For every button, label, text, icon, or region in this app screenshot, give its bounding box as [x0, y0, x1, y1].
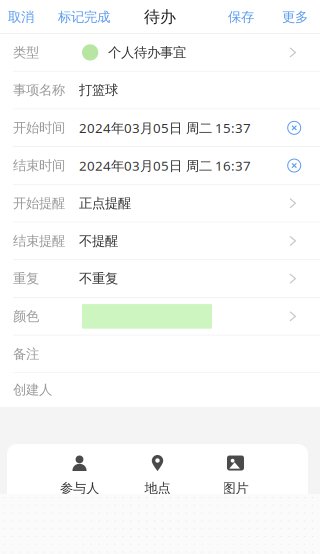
staticText: 不重复	[79, 270, 118, 287]
staticText: 2024年03月05日 周二 15:37	[79, 119, 251, 137]
staticText: 类型	[13, 44, 39, 61]
button[interactable]: 开始时间	[0, 109, 320, 146]
staticText: 创建人	[13, 382, 52, 398]
button[interactable]: 取消	[0, 0, 46, 34]
staticText: 颜色	[13, 308, 39, 325]
staticText: 图片	[222, 480, 248, 496]
button[interactable]: 标记完成	[46, 0, 122, 34]
staticText: 参与人	[60, 480, 99, 496]
button[interactable]: 地点	[126, 455, 188, 496]
button[interactable]: 颜色	[0, 298, 320, 335]
staticText: 保存	[228, 9, 254, 25]
staticText: 待办	[144, 7, 176, 27]
button[interactable]: 创建人	[0, 373, 320, 406]
staticText: 正点提醒	[79, 195, 131, 211]
staticText: 重复	[13, 270, 39, 287]
staticText: 打篮球	[79, 82, 118, 98]
button[interactable]: 保存	[215, 0, 268, 34]
staticText: 更多	[282, 9, 308, 25]
staticText: 事项名称	[13, 82, 65, 98]
button[interactable]: 事项名称	[0, 72, 320, 109]
staticText: 开始提醒	[13, 195, 65, 211]
staticText: 不提醒	[79, 233, 118, 249]
staticText: 2024年03月05日 周二 16:37	[79, 157, 251, 174]
staticText: 个人待办事宜	[108, 44, 186, 61]
button[interactable]: 结束提醒	[0, 222, 320, 259]
button[interactable]: 重复	[0, 260, 320, 297]
staticText: 地点	[144, 480, 170, 496]
staticText: 标记完成	[58, 9, 110, 25]
button[interactable]: 开始提醒	[0, 185, 320, 222]
button[interactable]: 结束时间	[0, 147, 320, 184]
staticText: 结束时间	[13, 157, 65, 174]
button[interactable]: 更多	[268, 0, 320, 34]
staticText: 取消	[8, 9, 34, 25]
button[interactable]: 备注	[0, 336, 320, 372]
staticText: 备注	[13, 346, 39, 362]
staticText: 开始时间	[13, 120, 65, 136]
staticText: 结束提醒	[13, 233, 65, 249]
button[interactable]: 类型	[0, 34, 320, 71]
button[interactable]: 参与人	[48, 455, 110, 496]
button[interactable]: 图片	[204, 455, 266, 496]
